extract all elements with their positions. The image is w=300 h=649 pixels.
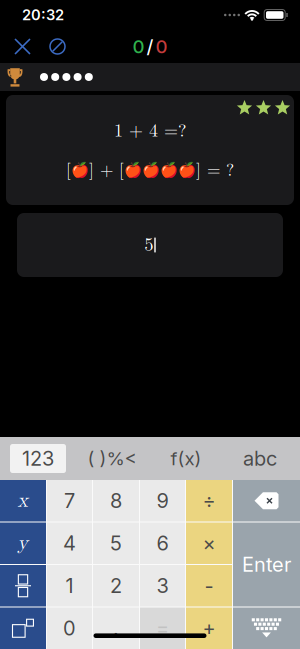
staticText: 1 + 4 =? — [114, 122, 186, 140]
button[interactable]: f(x) — [158, 444, 214, 473]
staticText: 4 — [63, 531, 76, 555]
staticText: 2 — [110, 574, 122, 598]
staticText: 0 — [155, 35, 167, 58]
button[interactable] — [233, 607, 300, 649]
button[interactable]: 8 — [93, 480, 139, 521]
button[interactable]: . — [93, 607, 139, 649]
button[interactable]: 4 — [47, 522, 92, 564]
staticText: Enter — [242, 552, 291, 577]
staticText: × — [202, 531, 215, 555]
button[interactable]: 9 — [140, 480, 185, 521]
button[interactable]: Skip — [43, 32, 72, 61]
button[interactable]: y — [0, 522, 46, 564]
staticText: 3 — [156, 574, 168, 598]
staticText: 7 — [64, 489, 75, 513]
staticText: 🍎 — [124, 162, 142, 179]
button[interactable]: abc — [232, 444, 288, 473]
button[interactable]: ÷ — [186, 480, 232, 521]
staticText: 🍎 — [160, 162, 178, 179]
button[interactable]: - — [186, 565, 232, 606]
button[interactable]: × — [186, 522, 232, 564]
staticText: [ — [66, 162, 71, 179]
button[interactable]: + — [186, 607, 232, 649]
staticText: 8 — [110, 489, 122, 513]
staticText: 0 — [132, 35, 144, 58]
staticText: . — [113, 616, 119, 640]
staticText: 123 — [22, 446, 54, 471]
button[interactable]: 7 — [47, 480, 92, 521]
staticText: / — [146, 35, 153, 58]
button[interactable] — [0, 565, 46, 606]
button[interactable]: 123 — [10, 444, 66, 473]
staticText: f(x) — [170, 447, 201, 470]
button[interactable] — [233, 480, 300, 521]
button[interactable]: 0 — [47, 607, 92, 649]
staticText: 9 — [156, 489, 168, 513]
staticText: abc — [243, 446, 277, 471]
staticText: 🍎 — [142, 162, 160, 179]
staticText: 0 — [63, 616, 76, 640]
staticText: + — [202, 616, 215, 640]
staticText: 5 — [110, 531, 122, 555]
button[interactable]: ( )%< — [84, 444, 140, 473]
button[interactable]: 6 — [140, 522, 185, 564]
button[interactable]: Achievements — [0, 67, 26, 87]
button[interactable]: = — [140, 607, 185, 649]
staticText: = — [156, 616, 169, 640]
staticText: 5 — [144, 236, 153, 254]
button[interactable]: 5 — [93, 522, 139, 564]
staticText: 1 — [65, 574, 73, 598]
staticText: x — [17, 491, 28, 511]
staticText: 🍎 — [71, 162, 89, 179]
staticText: ÷ — [202, 489, 215, 513]
staticText: ( )%< — [87, 447, 136, 470]
button[interactable]: x — [0, 480, 46, 521]
button[interactable]: 3 — [140, 565, 185, 606]
staticText: 🍎 — [178, 162, 196, 179]
button[interactable]: Close — [8, 32, 37, 61]
button[interactable]: 1 — [47, 565, 92, 606]
staticText: y — [17, 533, 28, 553]
staticText: ] = ? — [196, 162, 234, 179]
staticText: 20:32 — [22, 6, 64, 24]
button[interactable] — [0, 607, 46, 649]
button[interactable]: 5 — [17, 213, 283, 277]
button[interactable]: 2 — [93, 565, 139, 606]
staticText: 6 — [156, 531, 168, 555]
staticText: ] + [ — [89, 162, 124, 179]
button[interactable]: Enter — [233, 522, 300, 606]
staticText: - — [204, 574, 213, 598]
